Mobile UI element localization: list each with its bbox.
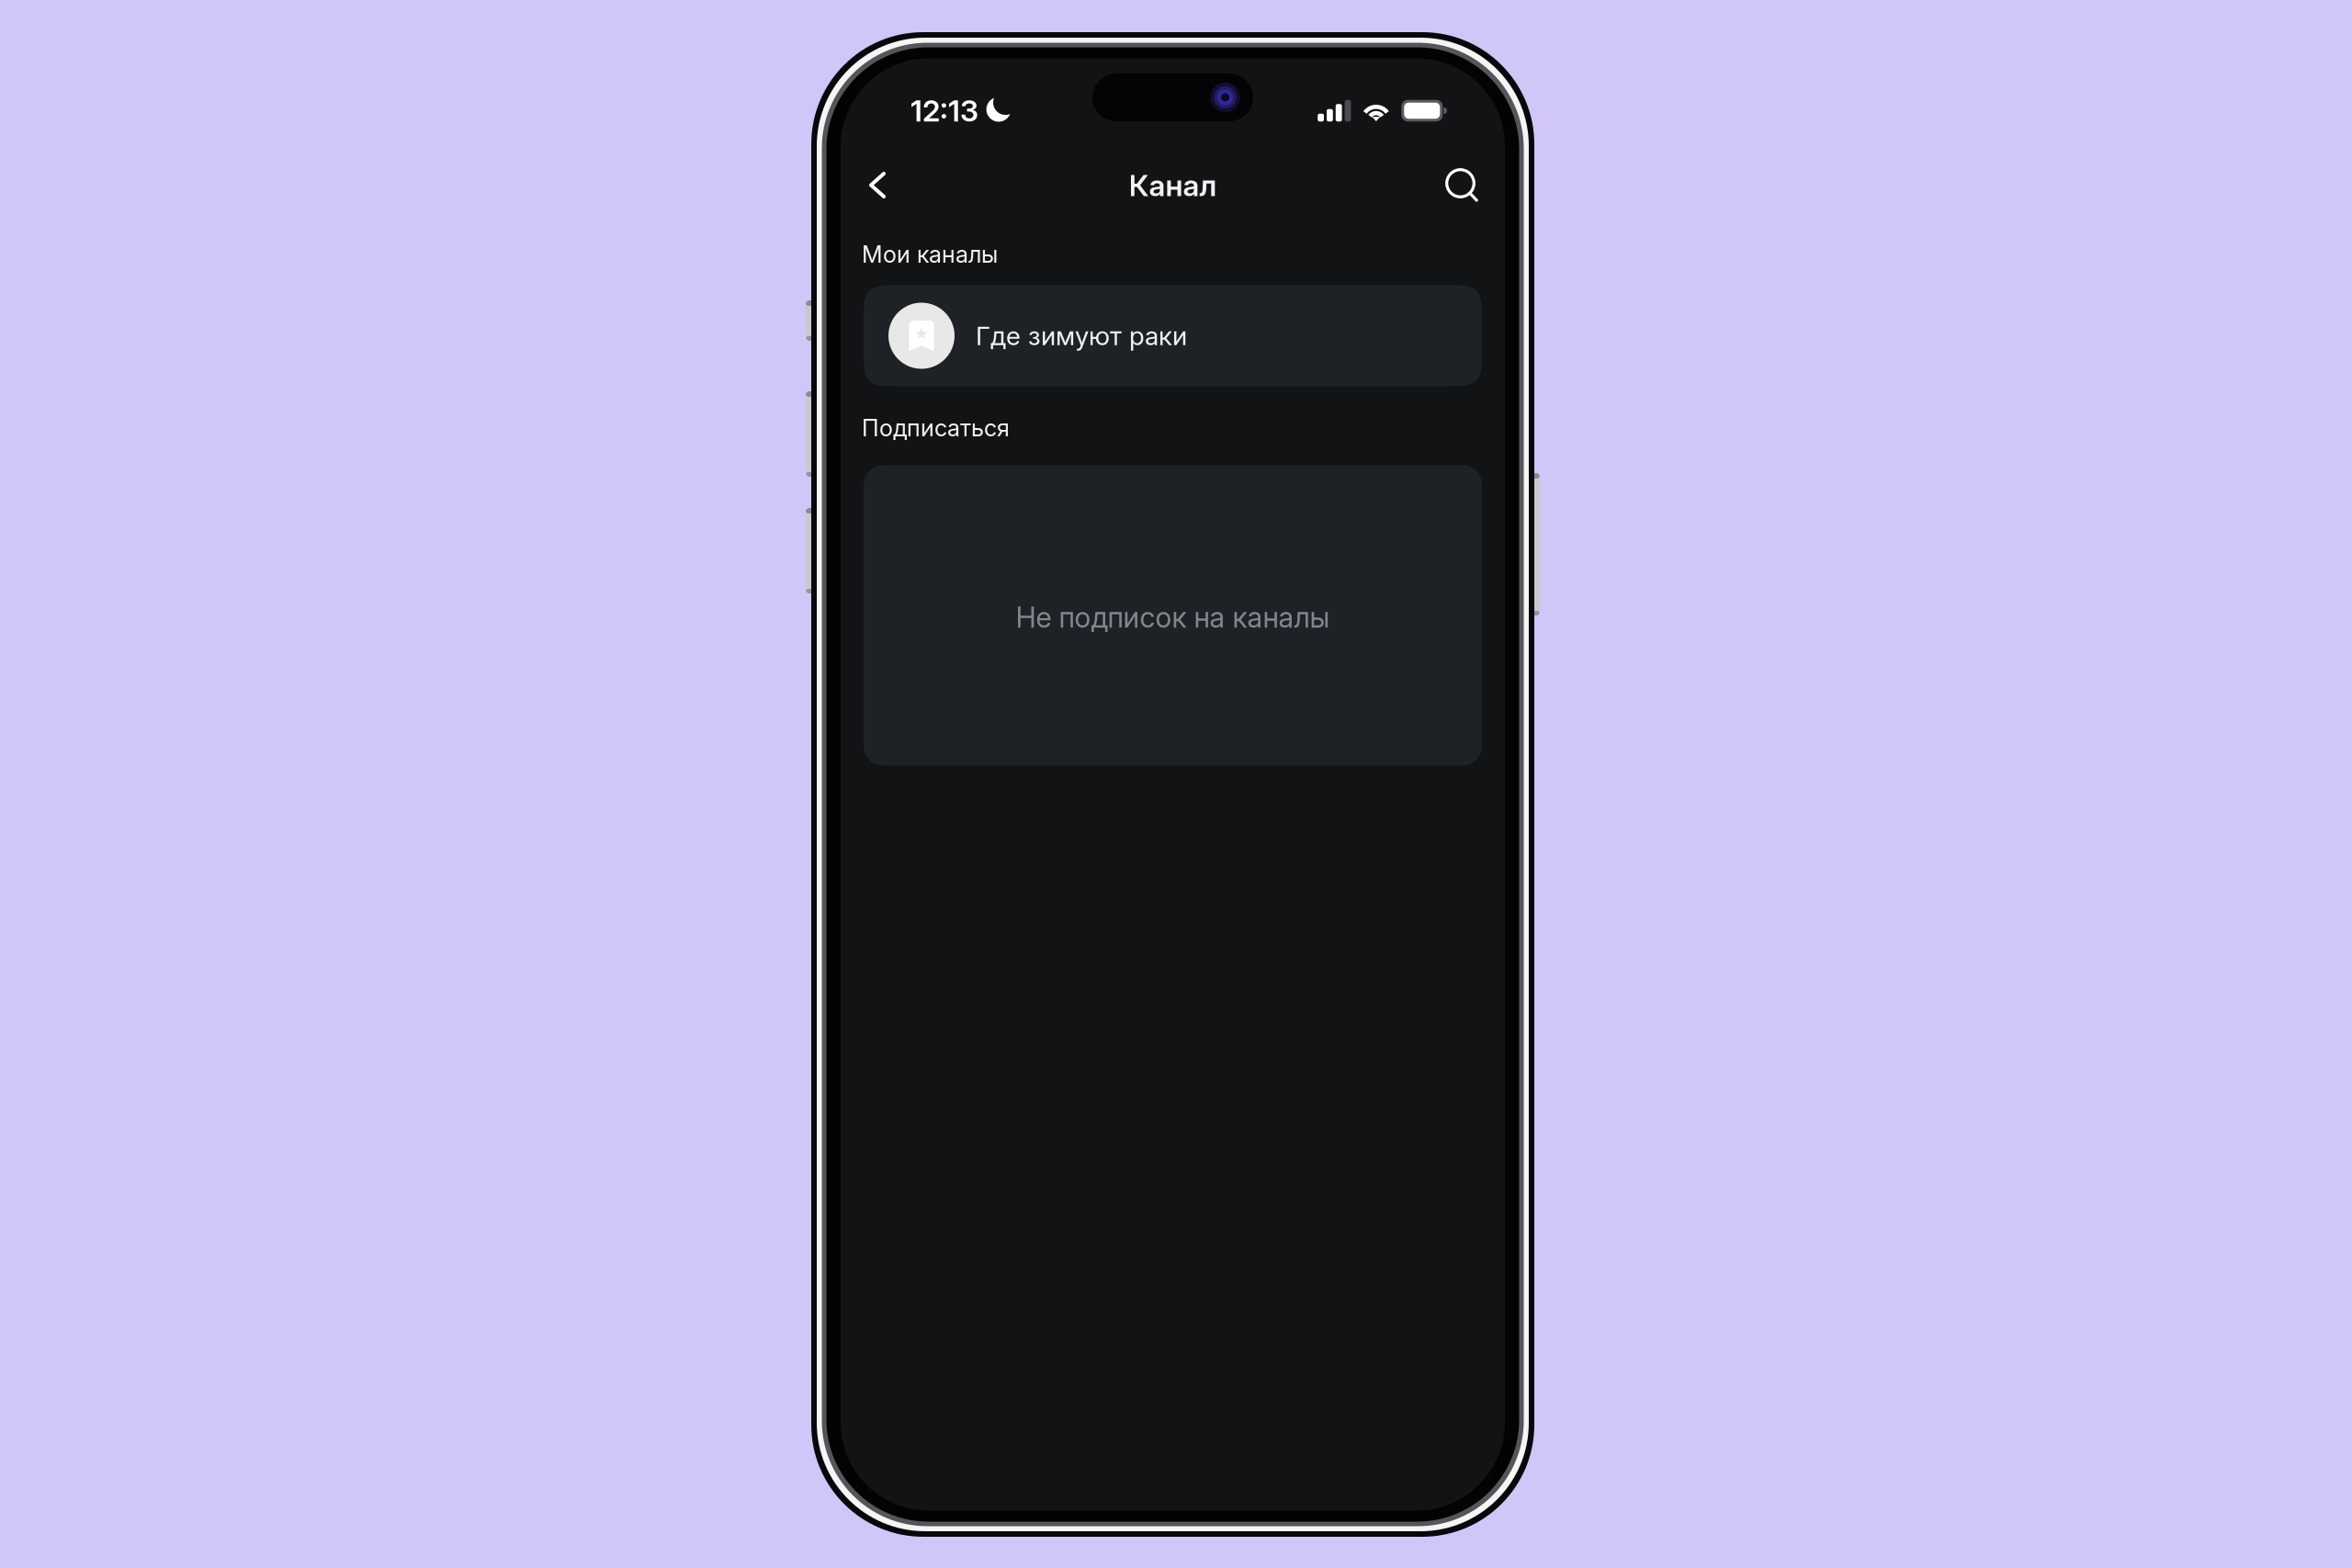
staticText: Не подписок на каналы — [1016, 600, 1330, 634]
staticText: 12:13 — [910, 93, 978, 128]
button[interactable]: Back — [849, 157, 906, 214]
staticText: Подписаться — [862, 414, 1010, 442]
staticText: Канал — [1129, 168, 1217, 203]
button[interactable]: Search — [1433, 157, 1490, 214]
button[interactable]: Где зимуют раки — [864, 285, 1482, 386]
staticText: Мои каналы — [862, 240, 998, 268]
staticText: Где зимуют раки — [976, 320, 1187, 351]
